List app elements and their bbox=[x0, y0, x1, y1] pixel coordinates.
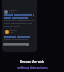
button[interactable]: Keep reading in the app bbox=[2, 0, 37, 52]
button[interactable]: Keep reading in the app bbox=[3, 43, 29, 46]
staticText: Keep reading in the app bbox=[3, 43, 29, 46]
staticText: without distractions bbox=[17, 66, 48, 70]
staticText: Browse the web bbox=[20, 60, 44, 64]
